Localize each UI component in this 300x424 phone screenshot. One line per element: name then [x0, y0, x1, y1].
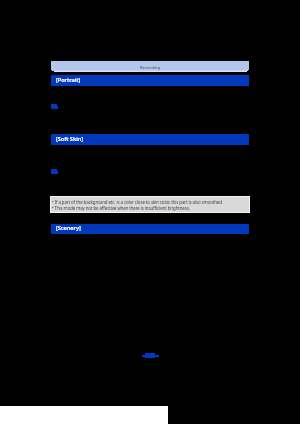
staticText: [Portrait] — [56, 76, 81, 84]
button[interactable]: [Portrait] — [51, 75, 249, 86]
button[interactable]: [Soft Skin] — [51, 134, 249, 145]
staticText: Recording — [140, 65, 160, 71]
button[interactable]: [Scenery] — [51, 224, 249, 234]
staticText: [Soft Skin] — [56, 135, 83, 143]
button[interactable]: Recording — [51, 61, 249, 70]
staticText: • This mode may not be effective when th… — [52, 205, 190, 211]
staticText: [Scenery] — [56, 224, 81, 232]
button[interactable]: Page number — [141, 351, 159, 360]
staticText: • If a part of the background etc. is a … — [52, 199, 223, 205]
